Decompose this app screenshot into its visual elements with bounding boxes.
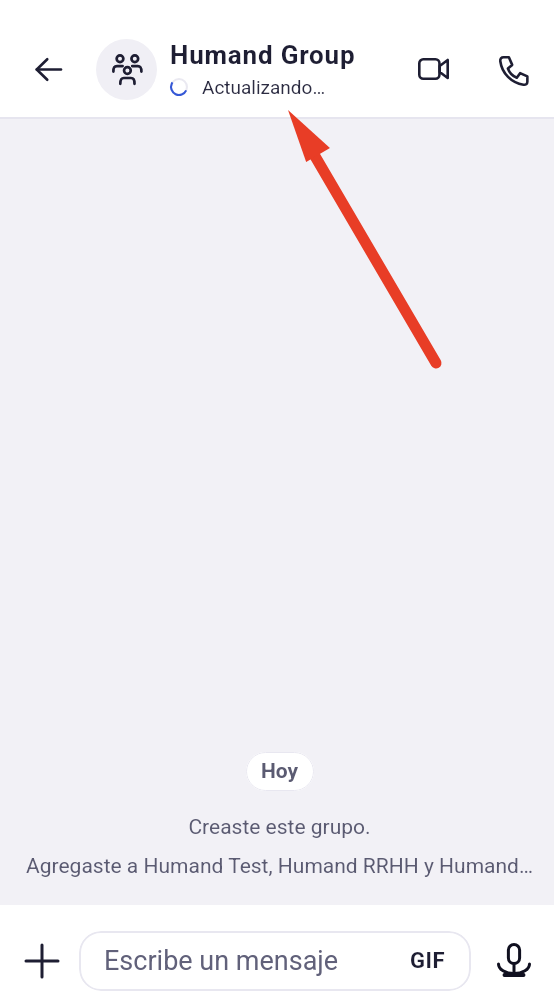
button[interactable]: Back xyxy=(24,45,72,93)
button[interactable]: Group avatar xyxy=(96,39,157,100)
staticText: GIF xyxy=(410,948,446,974)
button[interactable]: Hoy xyxy=(246,752,314,791)
staticText: Escribe un mensaje xyxy=(104,945,410,977)
button[interactable]: Escribe un mensaje xyxy=(79,931,471,991)
staticText: Actualizando… xyxy=(202,76,326,98)
staticText: Creaste este grupo. xyxy=(188,815,371,840)
button[interactable]: Video call xyxy=(409,45,457,93)
button[interactable]: Voice message xyxy=(490,936,538,984)
staticText: Hoy xyxy=(261,759,299,784)
staticText: Agregaste a Humand Test, Humand RRHH y H… xyxy=(26,854,533,879)
button[interactable]: Add attachment xyxy=(18,937,66,985)
staticText: Humand Group xyxy=(170,40,356,70)
button[interactable]: Call xyxy=(489,46,537,94)
